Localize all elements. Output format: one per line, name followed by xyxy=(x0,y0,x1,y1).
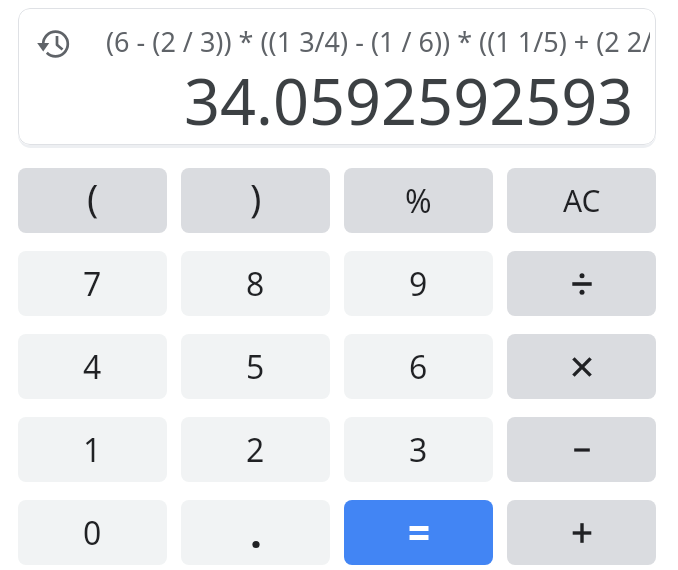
staticText: 9 xyxy=(409,262,428,306)
staticText: AC xyxy=(563,180,601,221)
staticText: 34.0592592593 xyxy=(184,58,634,144)
button[interactable] xyxy=(36,25,74,63)
staticText: 2 xyxy=(246,428,265,472)
button[interactable] xyxy=(507,251,656,316)
button[interactable]: 6 xyxy=(344,334,493,399)
staticText: 1 xyxy=(83,428,102,472)
staticText: 5 xyxy=(246,345,265,389)
button[interactable]: 4 xyxy=(18,334,167,399)
staticText: ) xyxy=(250,171,262,223)
button[interactable]: 2 xyxy=(181,417,330,482)
button[interactable]: ( xyxy=(18,168,167,233)
staticText: 8 xyxy=(246,262,265,306)
staticText: 7 xyxy=(83,262,102,306)
button[interactable]: ) xyxy=(181,168,330,233)
staticText: % xyxy=(405,179,432,223)
button[interactable]: 3 xyxy=(344,417,493,482)
button[interactable] xyxy=(507,500,656,565)
button[interactable] xyxy=(507,334,656,399)
button[interactable] xyxy=(181,500,330,565)
staticText: 3 xyxy=(409,428,428,472)
button[interactable]: % xyxy=(344,168,493,233)
staticText: (6 - (2 / 3)) * ((1 3/4) - (1 / 6)) * ((… xyxy=(106,23,650,60)
button[interactable]: 8 xyxy=(181,251,330,316)
button[interactable] xyxy=(507,417,656,482)
button[interactable]: AC xyxy=(507,168,656,233)
button[interactable]: 0 xyxy=(18,500,167,565)
button[interactable]: 5 xyxy=(181,334,330,399)
staticText: 4 xyxy=(83,345,102,389)
button[interactable]: 9 xyxy=(344,251,493,316)
button[interactable] xyxy=(344,500,493,565)
staticText: 0 xyxy=(83,511,102,555)
staticText: 6 xyxy=(409,345,428,389)
button[interactable]: 7 xyxy=(18,251,167,316)
staticText: ( xyxy=(87,171,99,223)
button[interactable]: 1 xyxy=(18,417,167,482)
